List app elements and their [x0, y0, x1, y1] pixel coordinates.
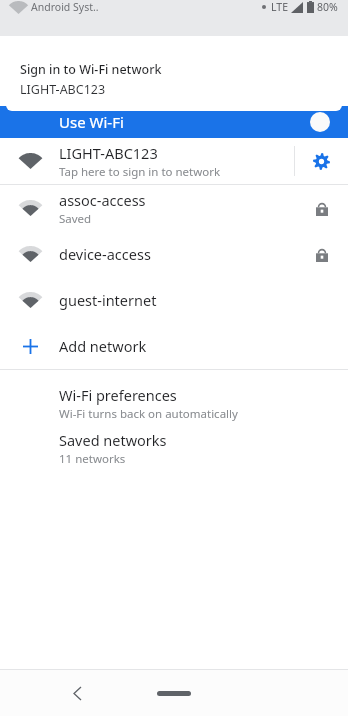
- button[interactable]: LIGHT-ABC123: [0, 138, 348, 184]
- button[interactable]: assoc-access: [0, 185, 348, 231]
- button[interactable]: Use Wi-Fi: [0, 106, 348, 138]
- button[interactable]: Add network: [0, 323, 348, 369]
- staticText: device-access: [59, 244, 151, 264]
- staticText: Saved: [59, 211, 92, 227]
- button[interactable]: Saved networks: [0, 423, 348, 468]
- button[interactable]: Wi-Fi preferences: [0, 378, 348, 423]
- button[interactable]: Back: [62, 678, 92, 708]
- staticText: 11 networks: [59, 451, 126, 467]
- staticText: LIGHT-ABC123: [20, 81, 106, 98]
- staticText: Wi-Fi turns back on automatically: [59, 406, 238, 422]
- staticText: LTE: [271, 0, 288, 14]
- button[interactable]: guest-internet: [0, 277, 348, 323]
- staticText: Wi-Fi preferences: [59, 385, 177, 405]
- staticText: Tap here to sign in to network: [59, 164, 221, 180]
- staticText: assoc-access: [59, 190, 146, 210]
- button[interactable]: Sign in to Wi-Fi network: [6, 47, 342, 111]
- button[interactable]: Network settings: [295, 138, 348, 184]
- staticText: Android Syst..: [31, 0, 99, 14]
- button[interactable]: Home: [156, 686, 192, 700]
- staticText: 80%: [317, 0, 338, 14]
- staticText: Add network: [59, 336, 147, 356]
- button[interactable]: device-access: [0, 231, 348, 277]
- staticText: Use Wi-Fi: [59, 112, 124, 132]
- staticText: LIGHT-ABC123: [59, 143, 158, 163]
- staticText: guest-internet: [59, 290, 157, 310]
- staticText: Saved networks: [59, 430, 167, 450]
- staticText: Sign in to Wi-Fi network: [20, 61, 162, 78]
